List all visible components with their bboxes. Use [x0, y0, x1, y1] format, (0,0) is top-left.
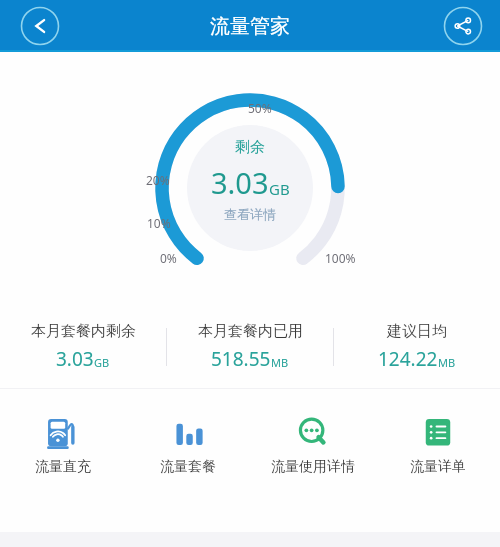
staticText: 50% — [248, 100, 272, 116]
staticText: GB — [269, 179, 290, 199]
staticText: 流量管家 — [210, 14, 290, 39]
staticText: 100% — [325, 250, 356, 266]
button[interactable]: 本月套餐内剩余 — [0, 316, 166, 378]
staticText: MB — [271, 355, 289, 370]
button[interactable]: Back — [20, 6, 60, 46]
button[interactable]: 建议日均 — [334, 316, 500, 378]
staticText: 流量套餐 — [160, 458, 216, 476]
staticText: 本月套餐内剩余 — [31, 322, 136, 341]
staticText: 3.03 — [56, 346, 94, 372]
button[interactable]: 流量套餐 — [125, 401, 250, 489]
staticText: MB — [438, 355, 456, 370]
staticText: 3.03 — [211, 163, 269, 202]
staticText: 查看详情 — [224, 206, 276, 222]
staticText: 10% — [147, 215, 171, 231]
staticText: 流量直充 — [35, 458, 91, 476]
button[interactable]: 流量详单 — [375, 401, 500, 489]
staticText: 建议日均 — [387, 322, 447, 341]
button[interactable]: 流量直充 — [0, 401, 125, 489]
staticText: 518.55 — [211, 346, 271, 372]
staticText: 20% — [146, 172, 170, 188]
staticText: 0% — [160, 250, 177, 266]
button[interactable]: 查看详情 — [224, 206, 276, 222]
button[interactable]: 流量使用详情 — [250, 401, 375, 489]
staticText: GB — [94, 355, 110, 370]
staticText: 124.22 — [378, 346, 438, 372]
staticText: 流量详单 — [410, 458, 466, 476]
button[interactable]: 本月套餐内已用 — [167, 316, 333, 378]
staticText: 剩余 — [235, 138, 265, 157]
staticText: 本月套餐内已用 — [198, 322, 303, 341]
button[interactable]: Share — [443, 6, 483, 46]
staticText: 流量使用详情 — [271, 458, 355, 476]
